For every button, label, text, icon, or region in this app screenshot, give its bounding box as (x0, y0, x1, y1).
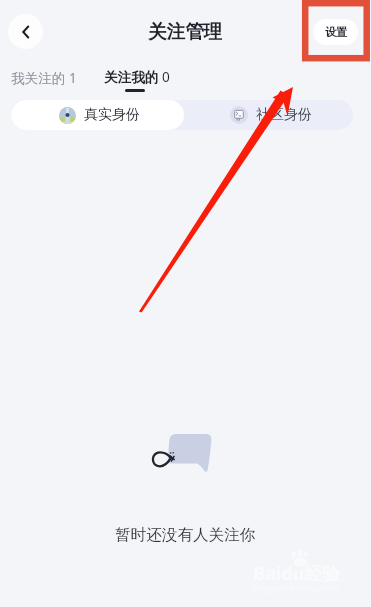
staticText: 关注管理 (148, 20, 223, 43)
staticText: 关注我的 0 (104, 67, 170, 86)
staticText: 我关注的 1 (11, 68, 77, 87)
button[interactable]: 我关注的 1 (11, 68, 77, 87)
button[interactable]: Back (8, 14, 43, 49)
button[interactable]: 设置 (313, 19, 358, 45)
button[interactable]: 真实身份 (11, 100, 184, 130)
staticText: 真实身份 (84, 106, 140, 124)
staticText: 设置 (325, 25, 347, 39)
staticText: 社区身份 (256, 106, 312, 124)
button[interactable]: 社区身份 (184, 100, 353, 130)
button[interactable]: 关注我的 0 (104, 67, 170, 92)
staticText: 暂时还没有人关注你 (115, 525, 256, 545)
